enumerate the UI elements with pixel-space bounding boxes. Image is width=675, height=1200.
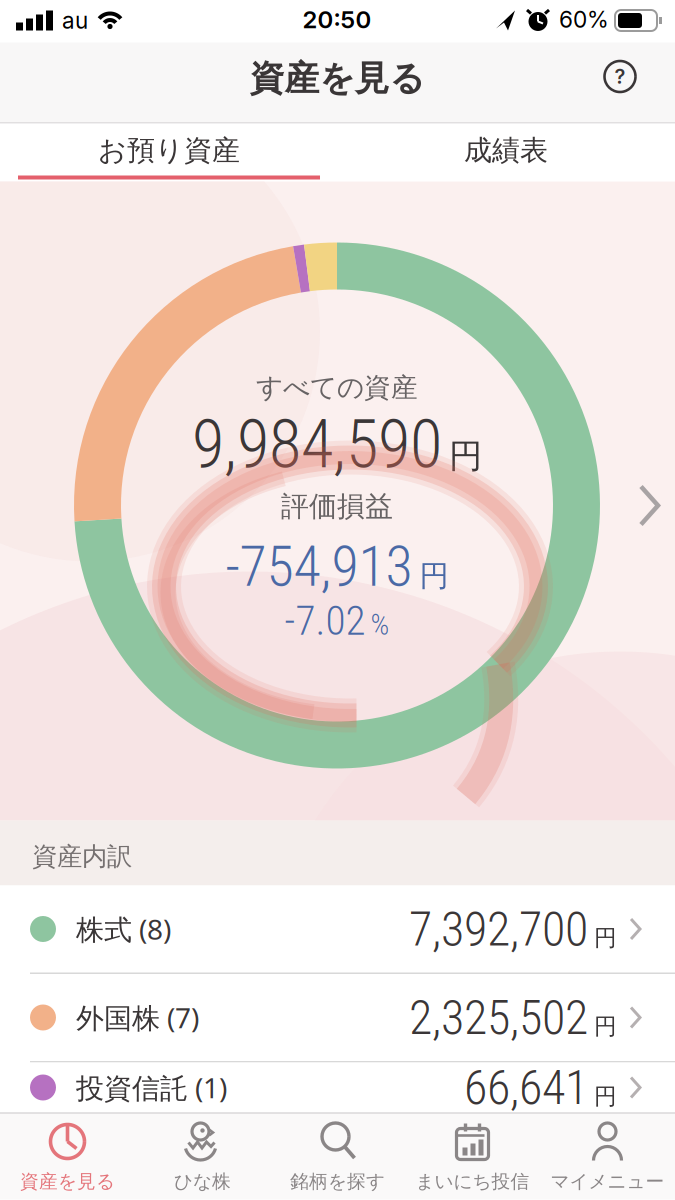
staticText: まいにち投信 <box>415 1170 529 1193</box>
staticText: 株式 (8) <box>76 910 171 948</box>
staticText: すべての資産 <box>256 371 418 404</box>
staticText: -754,913 <box>225 534 412 599</box>
staticText: 20:50 <box>302 5 371 34</box>
staticText: 円 <box>449 436 482 477</box>
staticText: お預り資産 <box>98 133 240 168</box>
staticText: 資産を見る <box>20 1170 115 1193</box>
staticText: 外国株 (7) <box>76 999 199 1036</box>
staticText: 円 <box>594 1082 617 1110</box>
staticText: 2,325,502 <box>409 989 588 1046</box>
staticText: 円 <box>419 558 448 594</box>
staticText: 66,641 <box>464 1059 588 1116</box>
button[interactable]: 資産を見る <box>0 1112 135 1199</box>
staticText: % <box>370 607 389 642</box>
staticText: 評価損益 <box>281 489 393 524</box>
button[interactable]: 成績表 <box>337 121 674 179</box>
staticText: 資産内訳 <box>32 841 132 872</box>
staticText: 投資信託 (1) <box>76 1069 227 1106</box>
button[interactable]: 株式 (8) <box>0 885 675 972</box>
button[interactable]: 外国株 (7) <box>0 974 675 1061</box>
staticText: 円 <box>594 1012 617 1040</box>
staticText: 銘柄を探す <box>290 1170 385 1193</box>
button[interactable]: ヘルプ <box>598 54 642 98</box>
staticText: 円 <box>594 924 617 952</box>
staticText: マイメニュー <box>550 1170 664 1193</box>
staticText: ひな株 <box>174 1170 231 1193</box>
staticText: 7,392,700 <box>409 901 588 957</box>
button[interactable]: 投資信託 (1) <box>0 1044 675 1131</box>
button[interactable]: 銘柄を探す <box>270 1112 405 1199</box>
staticText: 資産を見る <box>249 57 424 100</box>
button[interactable]: まいにち投信 <box>405 1112 540 1199</box>
staticText: 成績表 <box>464 133 548 168</box>
staticText: ? <box>614 64 625 89</box>
button[interactable]: お預り資産 <box>0 121 337 179</box>
button[interactable]: ひな株 <box>135 1112 270 1199</box>
staticText: au <box>62 7 88 34</box>
staticText: 9,984,590 <box>192 405 442 483</box>
button[interactable]: マイメニュー <box>540 1112 675 1199</box>
staticText: -7.02 <box>284 596 365 645</box>
button[interactable]: 資産の詳細 <box>627 484 671 526</box>
staticText: 60% <box>559 6 609 33</box>
